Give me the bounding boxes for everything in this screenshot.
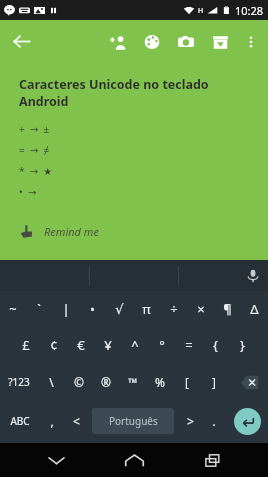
button[interactable]: Δ (241, 291, 268, 327)
staticText: ° (159, 336, 165, 354)
staticText: ¥ (104, 336, 112, 354)
staticText: [ (185, 374, 189, 390)
button[interactable]: ] (200, 363, 227, 401)
button[interactable]: Remind me (19, 224, 99, 239)
staticText: ™ (128, 374, 138, 390)
staticText: € (77, 336, 85, 354)
button[interactable]: \ (37, 363, 65, 401)
staticText: = (185, 336, 193, 354)
button[interactable]: < (64, 401, 88, 441)
button[interactable]: ™ (119, 363, 146, 401)
staticText: > (187, 413, 194, 429)
staticText: ^ (131, 336, 139, 354)
button[interactable]: > (178, 401, 202, 441)
staticText: * → ★ (19, 164, 53, 178)
staticText: Remind me (44, 224, 99, 239)
button[interactable]: Archive (203, 25, 237, 59)
button[interactable]: ¶ (214, 291, 241, 327)
staticText: ] (212, 374, 216, 390)
button[interactable]: π (133, 291, 160, 327)
button[interactable]: | (52, 291, 79, 327)
staticText: © (74, 374, 84, 390)
button[interactable]: Voice input (238, 261, 268, 291)
button[interactable]: © (65, 363, 92, 401)
staticText: ® (101, 374, 111, 390)
staticText: \ (49, 374, 54, 390)
staticText: + → ± (19, 122, 50, 136)
button[interactable]: √ (106, 291, 133, 327)
staticText: • (90, 300, 95, 318)
staticText: = → ≠ (19, 143, 50, 157)
staticText: H (198, 6, 204, 16)
button[interactable]: € (67, 327, 94, 363)
button[interactable]: Add image (169, 25, 203, 59)
button[interactable]: Recent apps (190, 443, 234, 477)
staticText: | (62, 300, 70, 318)
staticText: . (212, 413, 216, 429)
button[interactable]: Change color (135, 25, 169, 59)
staticText: ÷ (170, 300, 178, 318)
staticText: % (155, 374, 165, 390)
staticText: Δ (250, 300, 259, 318)
button[interactable]: ` (26, 291, 52, 327)
staticText: < (73, 413, 80, 429)
button[interactable]: £ (12, 327, 40, 363)
staticText: √ (115, 302, 124, 317)
button[interactable]: Back (0, 20, 43, 63)
staticText: π (142, 300, 151, 318)
staticText: • → (19, 185, 37, 199)
button[interactable]: Enter (226, 401, 268, 441)
button[interactable]: ?123 (0, 363, 37, 401)
button[interactable]: , (40, 401, 64, 441)
button[interactable]: ® (92, 363, 119, 401)
button[interactable]: ^ (121, 327, 148, 363)
staticText: , (50, 413, 54, 429)
button[interactable]: × (187, 291, 214, 327)
staticText: Caracteres Unicode no teclado Android (19, 76, 256, 110)
staticText: £ (22, 336, 30, 354)
button[interactable]: % (146, 363, 173, 401)
staticText: ¶ (223, 300, 232, 318)
button[interactable]: Português (92, 408, 174, 434)
button[interactable]: ¥ (94, 327, 121, 363)
button[interactable]: = (175, 327, 202, 363)
staticText: { (213, 336, 218, 354)
staticText: ABC (10, 414, 30, 428)
button[interactable]: Backspace (227, 363, 268, 401)
button[interactable]: Hide keyboard (34, 443, 78, 477)
button[interactable]: Add person (101, 25, 135, 59)
button[interactable]: . (202, 401, 226, 441)
button[interactable]: { (202, 327, 229, 363)
staticText: } (240, 336, 245, 354)
staticText: Português (109, 414, 158, 428)
button[interactable]: } (229, 327, 256, 363)
button[interactable]: ¢ (40, 327, 67, 363)
staticText: ?123 (8, 375, 30, 389)
staticText: 10:28 (235, 3, 264, 18)
button[interactable]: ÷ (160, 291, 187, 327)
button[interactable]: [ (173, 363, 200, 401)
button[interactable]: ABC (0, 401, 40, 441)
staticText: ¢ (50, 336, 58, 354)
staticText: ` (37, 300, 41, 318)
button[interactable]: • (79, 291, 106, 327)
button[interactable]: ° (148, 327, 175, 363)
button[interactable]: ~ (0, 291, 26, 327)
staticText: × (197, 300, 205, 318)
button[interactable]: More options (237, 28, 265, 56)
staticText: ~ (9, 300, 17, 318)
button[interactable]: Home (112, 443, 156, 477)
